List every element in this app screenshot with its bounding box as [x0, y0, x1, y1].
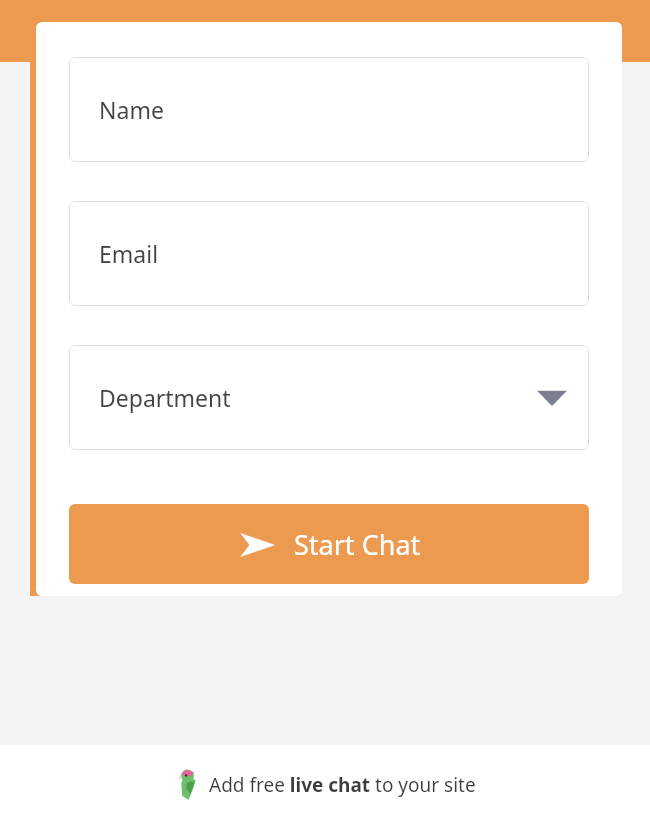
- button[interactable]: Department: [69, 345, 589, 450]
- staticText: Department: [99, 382, 231, 413]
- button[interactable]: Email: [69, 201, 589, 306]
- staticText: Add free live chat to your site: [209, 772, 476, 798]
- other: Open department list: [537, 389, 567, 407]
- button[interactable]: Start Chat: [69, 504, 589, 584]
- other: Parrot logo: [175, 770, 199, 800]
- staticText: Name: [99, 94, 164, 125]
- button[interactable]: Parrot logo: [175, 770, 476, 800]
- staticText: Email: [99, 238, 159, 269]
- staticText: Start Chat: [294, 526, 421, 563]
- button[interactable]: Name: [69, 57, 589, 162]
